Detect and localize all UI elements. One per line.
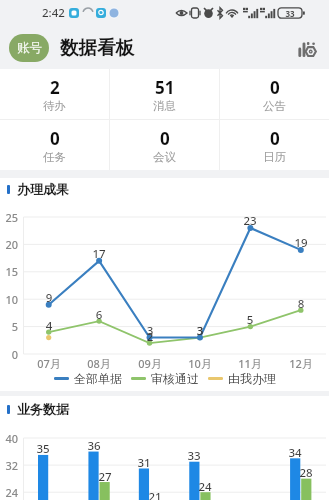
staticText: 账号 [17,40,42,56]
staticText: 办理成果 [17,181,69,197]
staticText: 33 [280,8,300,19]
staticText: 20 [0,237,18,252]
staticText: 12月 [284,356,318,371]
staticText: 27 [93,469,117,485]
staticText: 3 [188,323,212,339]
staticText: 32 [0,458,18,473]
staticText: 15 [0,264,18,279]
staticText: 审核通过 [151,371,199,386]
button[interactable]: 2 [0,69,109,119]
button[interactable]: 0 [110,120,219,170]
staticText: 35 [31,441,55,457]
staticText: 0 [270,127,280,150]
staticText: 9 [37,290,61,306]
button[interactable]: 0 [0,120,109,170]
staticText: 08月 [82,356,116,371]
staticText: 任务 [43,150,66,164]
staticText: 8 [289,296,313,312]
staticText: 全部单据 [74,371,122,386]
staticText: 4 [37,318,61,334]
staticText: 0 [160,127,170,150]
button[interactable]: 全部单据 [54,371,122,386]
staticText: 消息 [153,99,176,113]
button[interactable]: 0 [220,69,329,119]
staticText: 33 [182,448,206,464]
staticText: 25 [0,210,18,225]
staticText: 51 [155,76,175,99]
staticText: 5 [0,319,18,334]
staticText: 日历 [263,150,286,164]
staticText: 5 [238,312,262,328]
staticText: 3 [188,323,212,339]
staticText: 10 [0,292,18,307]
staticText: 0 [50,127,60,150]
staticText: 31 [132,455,156,471]
staticText: 24 [193,479,217,495]
staticText: 2 [50,76,60,99]
staticText: 17 [87,246,111,262]
staticText: 数据看板 [60,36,134,59]
staticText: 21 [143,489,167,500]
staticText: 09月 [133,356,167,371]
staticText: 2:42 [42,5,65,21]
button[interactable]: 0 [220,120,329,170]
staticText: 会议 [153,150,176,164]
staticText: 34 [283,445,307,461]
staticText: 公告 [263,99,286,113]
button[interactable]: 账号 [9,34,49,62]
staticText: 0 [0,347,18,362]
button[interactable]: 审核通过 [131,371,199,386]
button[interactable]: 由我办理 [208,371,276,386]
staticText: 由我办理 [228,371,276,386]
staticText: 36 [82,438,106,454]
staticText: 40 [0,431,18,446]
staticText: 6 [87,307,111,323]
staticText: 业务数据 [17,401,69,417]
staticText: 23 [238,213,262,229]
staticText: 11月 [233,356,267,371]
staticText: 07月 [32,356,66,371]
staticText: 10月 [183,356,217,371]
staticText: 28 [294,465,318,481]
staticText: 待办 [43,99,66,113]
staticText: 19 [289,235,313,251]
button[interactable]: 51 [110,69,219,119]
staticText: 2 [138,329,162,345]
staticText: 24 [0,485,18,500]
button[interactable]: Chart settings [293,34,321,62]
staticText: 3 [138,323,162,339]
staticText: 0 [270,76,280,99]
